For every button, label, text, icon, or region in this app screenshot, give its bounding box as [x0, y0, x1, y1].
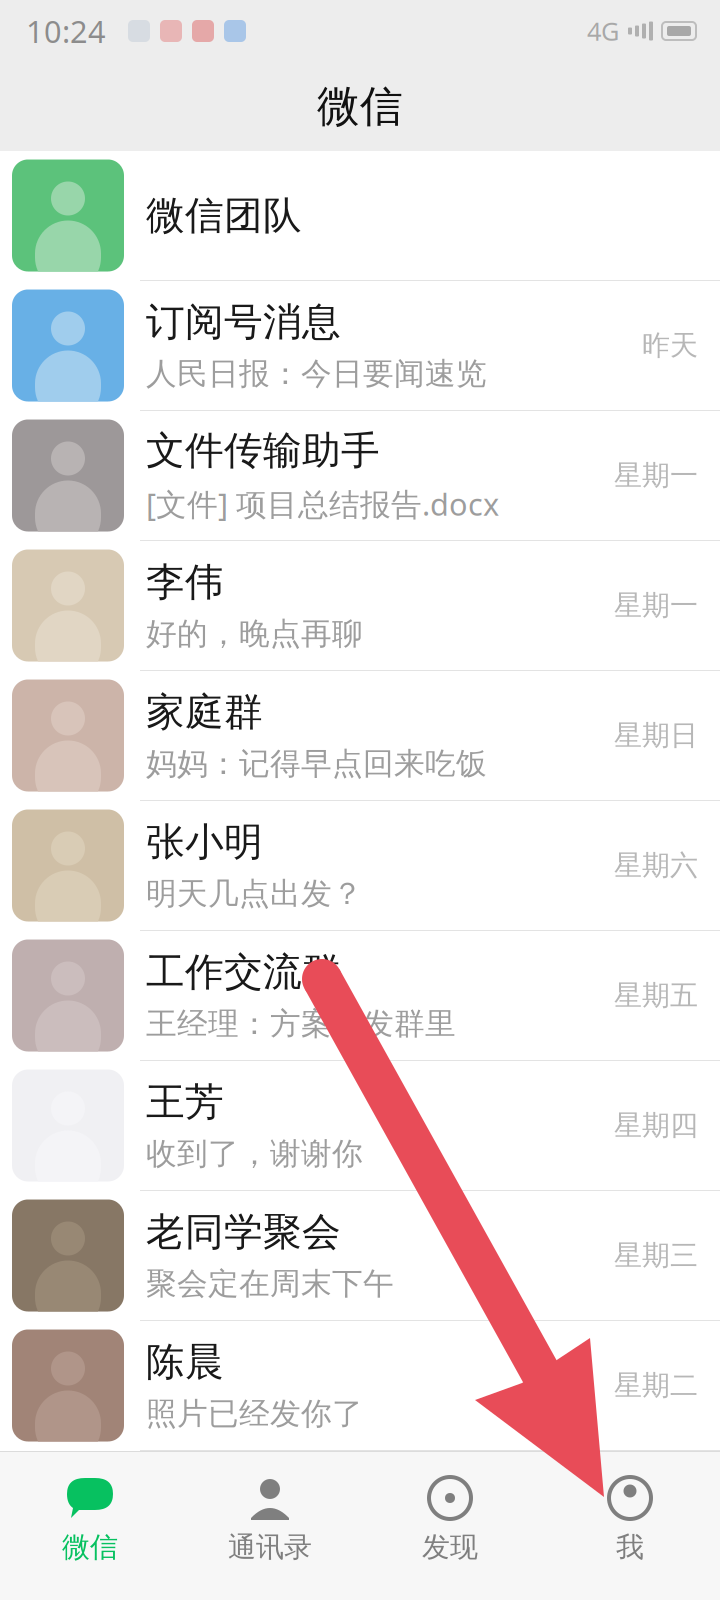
staticText: 好的，晚点再聊 [146, 615, 363, 653]
button[interactable]: 通讯录 [180, 1452, 360, 1600]
staticText: 老同学聚会 [146, 1208, 341, 1256]
staticText: 星期五 [614, 978, 698, 1013]
button[interactable]: 订阅号消息 [0, 281, 720, 411]
staticText: 星期三 [614, 1238, 698, 1273]
staticText: 微信 [62, 1530, 118, 1564]
staticText: 星期一 [614, 588, 698, 623]
staticText: 发现 [422, 1530, 478, 1564]
button[interactable]: 工作交流群 [0, 931, 720, 1061]
button[interactable]: 发现 [360, 1452, 540, 1600]
staticText: 星期四 [614, 1108, 698, 1143]
staticText: 家庭群 [146, 688, 263, 736]
staticText: 明天几点出发？ [146, 875, 363, 913]
button[interactable]: 微信团队 [0, 151, 720, 281]
staticText: 聚会定在周末下午 [146, 1265, 394, 1303]
staticText: 星期六 [614, 848, 698, 883]
staticText: 收到了，谢谢你 [146, 1135, 363, 1173]
staticText: 妈妈：记得早点回来吃饭 [146, 745, 487, 783]
staticText: 李伟 [146, 558, 224, 606]
staticText: 微信 [317, 80, 403, 133]
button[interactable]: 老同学聚会 [0, 1191, 720, 1321]
staticText: 王芳 [146, 1078, 224, 1126]
staticText: 星期日 [614, 718, 698, 753]
staticText: 微信团队 [146, 192, 302, 239]
staticText: 工作交流群 [146, 948, 341, 996]
button[interactable]: 微信 [0, 1452, 180, 1600]
staticText: 陈晨 [146, 1338, 224, 1386]
staticText: 张小明 [146, 818, 263, 866]
button[interactable]: 李伟 [0, 541, 720, 671]
staticText: 人民日报：今日要闻速览 [146, 355, 487, 393]
staticText: 通讯录 [228, 1530, 312, 1564]
staticText: 4G [587, 14, 619, 48]
staticText: 10:24 [26, 11, 106, 51]
button[interactable]: 王芳 [0, 1061, 720, 1191]
staticText: [文件] 项目总结报告.docx [146, 483, 499, 524]
button[interactable]: 陈晨 [0, 1321, 720, 1451]
staticText: 昨天 [642, 328, 698, 363]
staticText: 文件传输助手 [146, 427, 380, 474]
staticText: 我 [616, 1530, 644, 1564]
staticText: 星期一 [614, 458, 698, 493]
staticText: 照片已经发你了 [146, 1395, 363, 1433]
button[interactable]: 我 [540, 1452, 720, 1600]
staticText: 王经理：方案已发群里 [146, 1005, 456, 1043]
button[interactable]: 家庭群 [0, 671, 720, 801]
button[interactable]: 张小明 [0, 801, 720, 931]
staticText: 星期二 [614, 1368, 698, 1403]
button[interactable]: 文件传输助手 [0, 411, 720, 541]
staticText: 订阅号消息 [146, 298, 341, 346]
